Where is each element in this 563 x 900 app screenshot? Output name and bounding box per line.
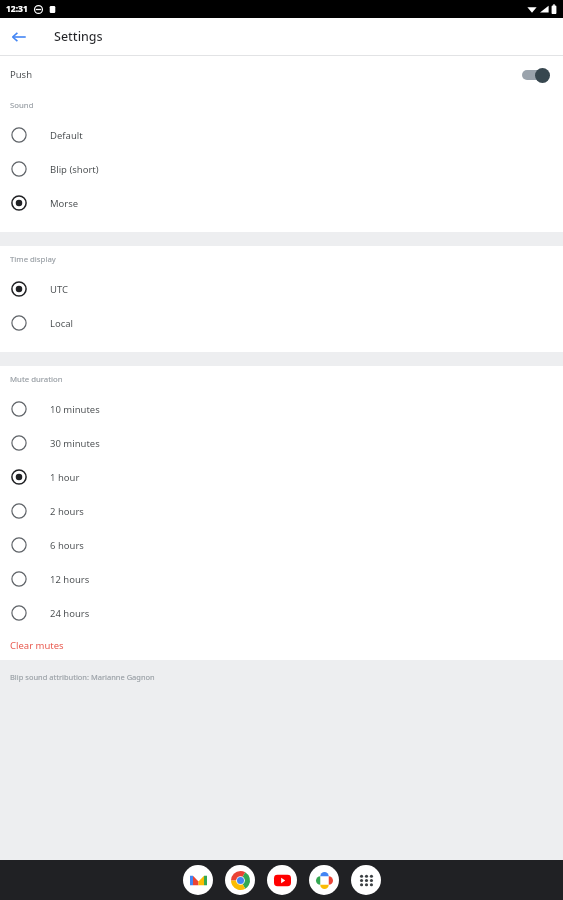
- button[interactable]: 1 hour: [0, 460, 563, 494]
- button[interactable]: YouTube: [267, 865, 297, 895]
- button[interactable]: Morse: [0, 186, 563, 220]
- button[interactable]: 10 minutes: [0, 392, 563, 426]
- button[interactable]: 2 hours: [0, 494, 563, 528]
- button[interactable]: UTC: [0, 272, 563, 306]
- staticText: Blip (short): [50, 163, 99, 176]
- button[interactable]: 6 hours: [0, 528, 563, 562]
- staticText: UTC: [50, 283, 69, 296]
- staticText: Mute duration: [10, 374, 63, 385]
- staticText: Push: [10, 68, 33, 81]
- staticText: 1 hour: [50, 471, 80, 484]
- button[interactable]: Clear mutes: [0, 630, 563, 660]
- button[interactable]: Default: [0, 118, 563, 152]
- button[interactable]: Chrome: [225, 865, 255, 895]
- staticText: Default: [50, 129, 83, 142]
- button[interactable]: 12 hours: [0, 562, 563, 596]
- staticText: Settings: [54, 28, 103, 45]
- button[interactable]: 30 minutes: [0, 426, 563, 460]
- staticText: 30 minutes: [50, 437, 100, 450]
- button[interactable]: All apps: [351, 865, 381, 895]
- staticText: 12:31: [6, 3, 28, 15]
- staticText: 24 hours: [50, 607, 90, 620]
- staticText: 12 hours: [50, 573, 90, 586]
- button[interactable]: 24 hours: [0, 596, 563, 630]
- staticText: Morse: [50, 197, 79, 210]
- staticText: Clear mutes: [10, 639, 64, 652]
- button[interactable]: Gmail: [183, 865, 213, 895]
- staticText: Time display: [10, 254, 56, 265]
- button[interactable]: Blip (short): [0, 152, 563, 186]
- button[interactable]: Photos: [309, 865, 339, 895]
- staticText: 2 hours: [50, 505, 84, 518]
- button[interactable]: Push: [0, 59, 563, 90]
- button[interactable]: Local: [0, 306, 563, 340]
- staticText: Local: [50, 317, 74, 330]
- staticText: 10 minutes: [50, 403, 100, 416]
- button[interactable]: Back: [0, 18, 38, 55]
- staticText: Blip sound attribution: Marianne Gagnon: [10, 672, 155, 682]
- staticText: 6 hours: [50, 539, 84, 552]
- staticText: Sound: [10, 100, 34, 111]
